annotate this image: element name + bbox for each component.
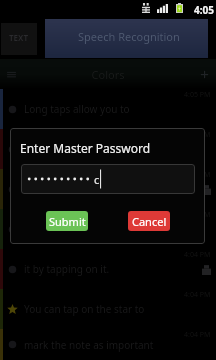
staticText: TEXT — [9, 32, 29, 43]
button[interactable]: Add — [198, 68, 211, 81]
staticText: Enter Master Password — [20, 140, 151, 156]
staticText: so it stays private. — [24, 222, 211, 236]
staticText: Cancel — [132, 214, 167, 229]
button[interactable]: so it stays private. — [0, 209, 216, 249]
button[interactable]: Cancel — [128, 211, 170, 231]
staticText: Submit — [49, 214, 86, 229]
staticText: select notes. Try it out. — [24, 142, 211, 156]
button[interactable]: it by tapping on it. — [0, 249, 216, 289]
staticText: 4:04 PM — [184, 250, 211, 260]
button[interactable]: You can lock a note — [0, 169, 216, 209]
staticText: 4:04 PM — [184, 330, 211, 340]
button[interactable]: c — [21, 164, 195, 194]
button[interactable]: Speech Recognition — [45, 19, 208, 58]
staticText: Long taps allow you to — [24, 102, 211, 116]
button[interactable]: select notes. Try it out. — [0, 129, 216, 169]
staticText: You can tap on the star to — [24, 302, 211, 316]
staticText: 4:05 PM — [184, 210, 211, 220]
button[interactable]: TEXT — [1, 23, 37, 55]
staticText: Speech Recognition — [78, 29, 180, 44]
button[interactable]: mark the note as important — [0, 329, 216, 360]
staticText: it by tapping on it. — [24, 262, 202, 276]
button[interactable]: Long taps allow you to — [0, 89, 216, 129]
button[interactable]: Menu — [5, 68, 18, 81]
staticText: 4:05 PM — [184, 170, 211, 180]
staticText: 4:04 PM — [184, 290, 211, 300]
staticText: You can lock a note — [24, 182, 202, 196]
staticText: c — [94, 172, 100, 187]
staticText: 4:05 PM — [184, 130, 211, 140]
button[interactable]: Submit — [46, 211, 88, 231]
staticText: 4:05 PM — [184, 90, 211, 100]
button[interactable]: You can tap on the star to — [0, 289, 216, 329]
staticText: 4:05 — [194, 3, 214, 17]
staticText: mark the note as important — [24, 338, 211, 352]
